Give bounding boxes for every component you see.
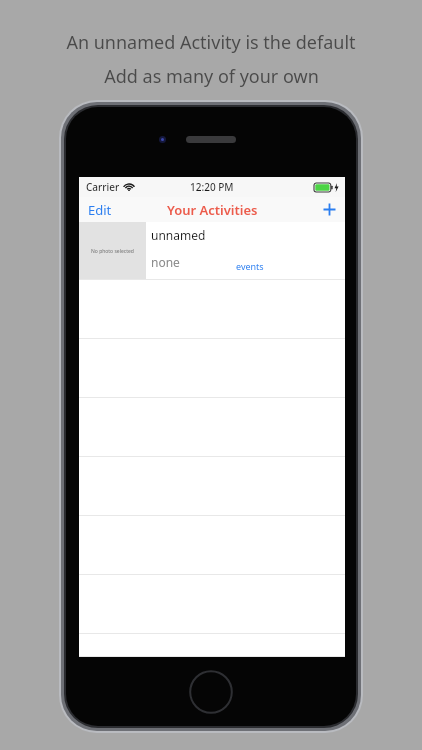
button[interactable]: events <box>236 260 264 272</box>
staticText: events <box>236 260 264 272</box>
staticText: Add as many of your own <box>104 64 319 89</box>
staticText: Your Activities <box>167 201 258 219</box>
button[interactable]: Add activity <box>314 202 345 217</box>
staticText: Edit <box>88 201 112 219</box>
staticText: 12:20 PM <box>190 180 234 194</box>
button[interactable]: Edit <box>79 198 121 222</box>
button[interactable]: No photo selected <box>79 222 345 280</box>
staticText: No photo selected <box>91 248 134 255</box>
staticText: Carrier <box>86 180 120 194</box>
staticText: An unnamed Activity is the default <box>66 30 356 55</box>
button[interactable] <box>79 634 345 657</box>
staticText: unnamed <box>151 227 206 243</box>
staticText: none <box>151 254 180 270</box>
button[interactable]: Home <box>189 670 233 714</box>
